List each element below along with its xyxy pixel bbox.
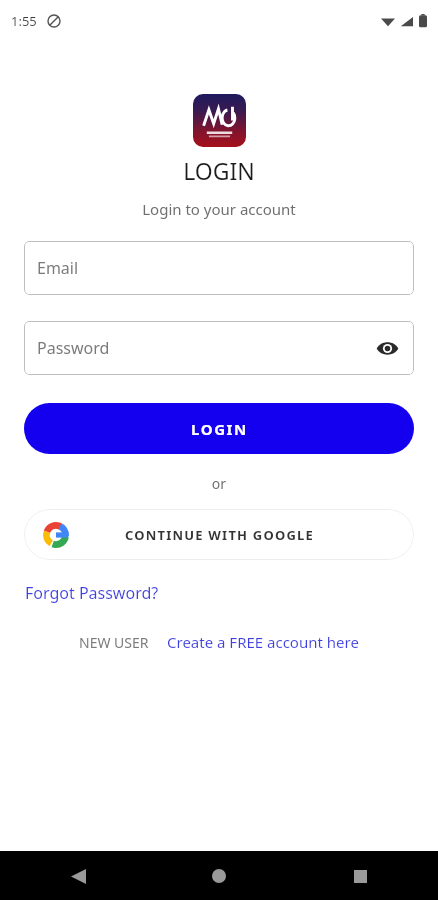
staticText: Login to your account xyxy=(0,199,438,219)
staticText: LOGIN xyxy=(0,155,438,186)
staticText: Create a FREE account here xyxy=(167,632,359,652)
button[interactable]: Password xyxy=(24,321,414,375)
button[interactable]: Show password xyxy=(374,335,400,361)
button[interactable]: Forgot Password? xyxy=(25,582,159,604)
staticText: Forgot Password? xyxy=(25,582,159,604)
staticText: Email xyxy=(37,257,79,279)
button[interactable]: CONTINUE WITH GOOGLE xyxy=(24,509,414,560)
staticText: 1:55 xyxy=(11,12,37,30)
staticText: LOGIN xyxy=(191,419,248,439)
button[interactable]: Recents xyxy=(342,858,378,894)
button[interactable]: Email xyxy=(24,241,414,295)
button[interactable]: Home xyxy=(201,858,237,894)
button[interactable]: Back xyxy=(60,858,96,894)
staticText: CONTINUE WITH GOOGLE xyxy=(125,526,314,544)
button[interactable]: LOGIN xyxy=(24,403,414,454)
staticText: or xyxy=(0,474,438,493)
staticText: NEW USER xyxy=(79,633,149,652)
staticText: Password xyxy=(37,337,110,359)
button[interactable]: Create a FREE account here xyxy=(167,632,359,652)
